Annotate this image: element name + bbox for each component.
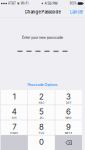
staticText: Cancel	[70, 9, 83, 15]
button[interactable]: 6	[55, 105, 82, 120]
staticText: 3	[66, 92, 71, 101]
staticText: WXYZ	[65, 131, 73, 135]
staticText: 2	[39, 92, 44, 101]
button[interactable]: Delete	[55, 135, 82, 150]
staticText: Enter your new passcode	[22, 35, 63, 40]
button[interactable]: 2	[28, 90, 55, 105]
staticText: TUV	[38, 131, 44, 135]
button[interactable]: 0	[28, 135, 55, 150]
button[interactable]: 7	[1, 120, 28, 135]
staticText: 7	[12, 122, 16, 131]
staticText: GHI	[12, 116, 17, 119]
staticText: 83%	[70, 2, 78, 5]
staticText: 9	[66, 122, 71, 131]
staticText: 4:56 PM	[43, 1, 57, 5]
button[interactable]: Cancel	[68, 8, 84, 16]
button[interactable]: 3	[55, 90, 82, 105]
button[interactable]: 9	[55, 120, 82, 135]
button[interactable]: 1	[1, 90, 28, 105]
staticText: 0	[39, 137, 44, 147]
staticText: ABC	[38, 101, 44, 104]
button[interactable]: 5	[28, 105, 55, 120]
staticText: 8	[39, 122, 44, 131]
staticText: DEF	[66, 101, 71, 104]
staticText: JKL	[39, 116, 43, 119]
staticText: 6	[66, 107, 71, 116]
staticText: 4	[12, 107, 17, 116]
button[interactable]: 8	[28, 120, 55, 135]
staticText: MNO	[66, 116, 72, 119]
staticText: Wi-Fi	[20, 2, 29, 5]
staticText: PQRS	[10, 131, 18, 135]
button[interactable]: Passcode Options	[27, 81, 57, 88]
staticText: Passcode Options	[27, 82, 57, 87]
staticText: Change Passcode	[24, 9, 60, 14]
staticText: 1	[13, 92, 16, 101]
staticText: 5	[39, 107, 44, 116]
staticText: AT&T	[7, 2, 17, 5]
button[interactable]: 4	[1, 105, 28, 120]
